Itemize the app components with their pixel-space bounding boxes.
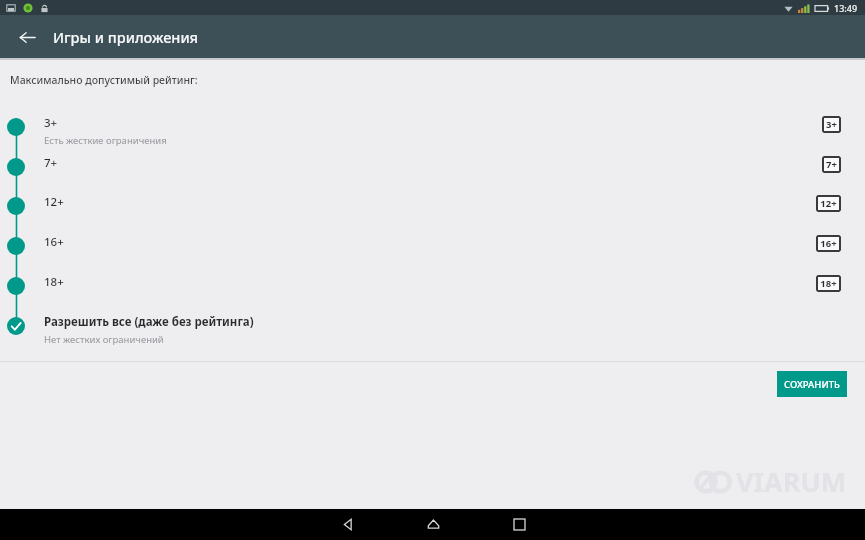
- staticText: Нет жестких ограничений: [44, 333, 164, 346]
- staticText: 7+: [44, 155, 58, 171]
- button[interactable]: Back: [10, 20, 44, 54]
- button[interactable]: 3+: [0, 108, 865, 147]
- staticText: VIARUM: [736, 463, 847, 500]
- staticText: Есть жесткие ограничения: [44, 134, 167, 147]
- button[interactable]: 18+: [0, 267, 865, 306]
- staticText: 16+: [820, 237, 837, 250]
- staticText: Игры и приложения: [53, 27, 199, 47]
- staticText: 13:49: [834, 2, 858, 14]
- staticText: Разрешить все (даже без рейтинга): [44, 314, 254, 330]
- button[interactable]: 16+: [0, 227, 865, 266]
- staticText: СОХРАНИТЬ: [784, 378, 840, 391]
- staticText: 18+: [44, 274, 64, 290]
- button[interactable]: 12+: [0, 187, 865, 226]
- staticText: 3+: [44, 115, 58, 131]
- button[interactable]: Recent apps: [476, 509, 562, 540]
- staticText: Максимально допустимый рейтинг:: [10, 73, 198, 87]
- button[interactable]: 7+: [0, 148, 865, 187]
- button[interactable]: Home: [390, 509, 476, 540]
- staticText: 12+: [44, 194, 64, 210]
- staticText: 12+: [820, 197, 837, 210]
- staticText: 18+: [820, 277, 837, 290]
- button[interactable]: Back: [304, 509, 390, 540]
- button[interactable]: СОХРАНИТЬ: [777, 371, 847, 397]
- staticText: 16+: [44, 234, 64, 250]
- button[interactable]: Разрешить все (даже без рейтинга): [0, 307, 865, 351]
- staticText: 7+: [826, 158, 837, 171]
- staticText: 3+: [826, 118, 837, 131]
